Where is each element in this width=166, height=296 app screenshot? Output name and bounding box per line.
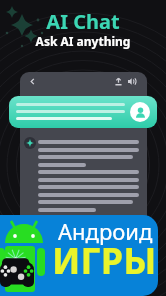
button[interactable] [9,96,157,128]
other: Share [113,76,124,87]
button[interactable]: Андроид [0,215,158,296]
staticText: ИГРЫ [52,236,157,285]
staticText: Андроид [58,216,153,246]
staticText: Ask AI anything [0,33,166,49]
other: Sound [126,76,137,87]
staticText: AI Chat [0,8,166,35]
other: Back [27,76,38,87]
